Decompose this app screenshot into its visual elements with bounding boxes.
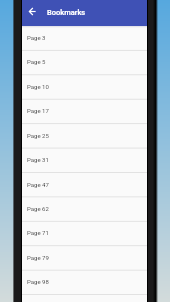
button[interactable]: Page 31 xyxy=(22,148,147,172)
staticText: Page 5 xyxy=(27,58,46,65)
button[interactable]: Page 3 xyxy=(22,26,147,50)
button[interactable]: Page 62 xyxy=(22,197,147,221)
staticText: Bookmarks xyxy=(47,8,86,17)
staticText: Page 62 xyxy=(27,205,49,212)
staticText: Page 47 xyxy=(27,181,49,188)
button[interactable]: Page 47 xyxy=(22,173,147,197)
button[interactable]: Page 71 xyxy=(22,221,147,245)
button[interactable]: Page 98 xyxy=(22,270,147,294)
button[interactable]: Page 10 xyxy=(22,75,147,99)
button[interactable]: Page 5 xyxy=(22,50,147,74)
staticText: Page 3 xyxy=(27,34,46,41)
staticText: Page 79 xyxy=(27,254,49,261)
button[interactable]: Bookmarks xyxy=(47,5,86,20)
button[interactable]: Back xyxy=(25,4,40,19)
button[interactable]: Page 25 xyxy=(22,124,147,148)
staticText: Page 10 xyxy=(27,83,49,90)
button[interactable]: Page 17 xyxy=(22,99,147,123)
staticText: Page 98 xyxy=(27,278,49,285)
button[interactable]: Page 79 xyxy=(22,246,147,270)
staticText: Page 71 xyxy=(27,229,49,236)
staticText: Page 31 xyxy=(27,156,49,163)
staticText: Page 17 xyxy=(27,107,49,114)
staticText: Page 25 xyxy=(27,132,49,139)
